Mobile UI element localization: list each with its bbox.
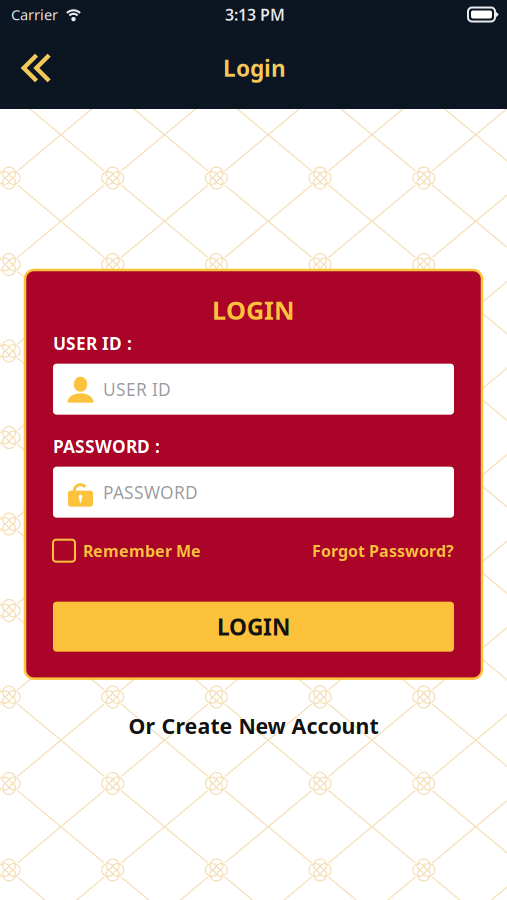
staticText: Login [223,53,286,83]
button[interactable]: LOGIN [53,602,454,652]
button[interactable]: Forgot Password? [312,540,454,561]
staticText: Or Create New Account [128,712,378,740]
staticText: Carrier [11,5,58,24]
staticText: 3:13 PM [225,4,285,25]
button[interactable]: Or Create New Account [128,712,378,740]
button[interactable]: Remember Me [53,540,201,562]
staticText: PASSWORD : [53,435,160,458]
staticText: Remember Me [83,540,201,561]
button[interactable]: Back [6,38,66,98]
staticText: USER ID : [53,332,132,355]
staticText: Forgot Password? [312,540,454,561]
staticText: LOGIN [212,293,295,327]
staticText: LOGIN [217,612,290,642]
staticText: PASSWORD [103,481,198,504]
staticText: USER ID [103,378,171,401]
